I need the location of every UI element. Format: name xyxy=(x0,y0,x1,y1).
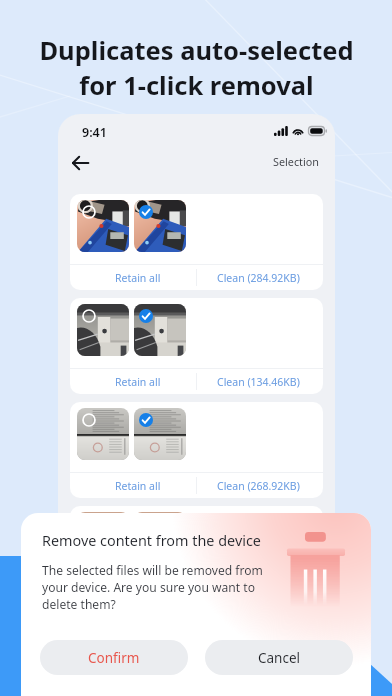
staticText: Duplicates auto-selected xyxy=(39,33,354,68)
button[interactable]: Retain all xyxy=(70,577,196,602)
button[interactable]: Selected photo xyxy=(134,512,186,564)
staticText: for 1-click removal xyxy=(79,68,314,103)
staticText: Clean (96.24KB) xyxy=(220,583,297,597)
button[interactable]: Clean (134.46KB) xyxy=(197,369,323,394)
button[interactable]: Clean (284.92KB) xyxy=(197,265,323,290)
staticText: The selected files will be removed from … xyxy=(42,562,270,613)
staticText: Retain all xyxy=(115,271,161,285)
staticText: Clean (268.92KB) xyxy=(217,479,300,493)
staticText: Cancel xyxy=(258,649,301,667)
button[interactable]: Selected photo xyxy=(134,304,186,356)
staticText: Retain all xyxy=(115,479,161,493)
button[interactable]: Selection xyxy=(270,150,322,173)
button[interactable]: Clean (268.92KB) xyxy=(197,473,323,498)
button[interactable]: Retain all xyxy=(70,473,196,498)
staticText: Confirm xyxy=(88,649,140,667)
staticText: 9:41 xyxy=(82,124,107,141)
staticText: Selection xyxy=(273,154,319,169)
staticText: Retain all xyxy=(115,375,161,389)
button[interactable]: Selected photo xyxy=(134,408,186,460)
button[interactable]: Photo xyxy=(77,512,129,564)
staticText: Retain all xyxy=(115,583,161,597)
staticText: Remove content from the device xyxy=(42,531,261,551)
button[interactable]: Photo xyxy=(77,304,129,356)
button[interactable]: Photo xyxy=(77,200,129,252)
button[interactable]: Clean (96.24KB) xyxy=(197,577,323,602)
button[interactable]: Photo xyxy=(77,408,129,460)
button[interactable]: Cancel xyxy=(205,640,353,675)
button[interactable]: Retain all xyxy=(70,369,196,394)
button[interactable]: Selected photo xyxy=(134,200,186,252)
button[interactable]: Retain all xyxy=(70,265,196,290)
staticText: Clean (284.92KB) xyxy=(217,271,300,285)
button[interactable]: Back xyxy=(62,145,98,181)
staticText: Clean (134.46KB) xyxy=(217,375,300,389)
button[interactable]: Confirm xyxy=(40,640,188,675)
